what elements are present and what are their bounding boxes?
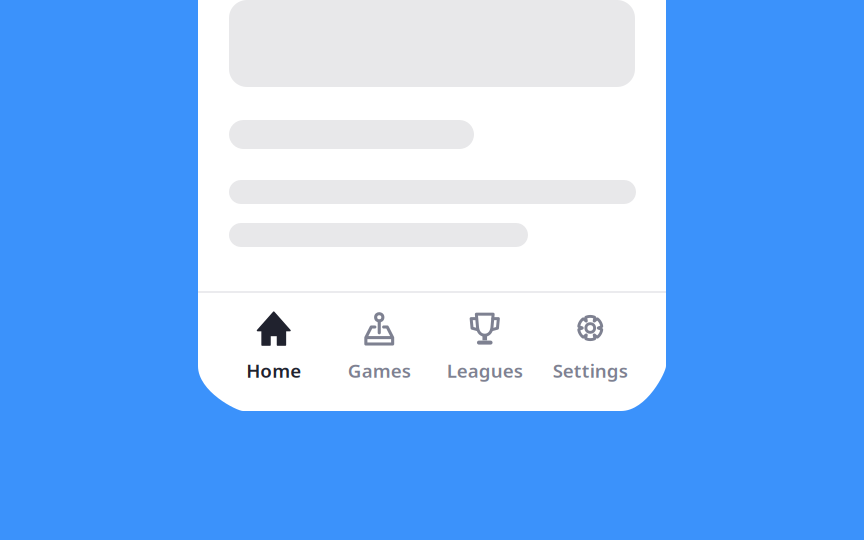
staticText: Home <box>246 358 301 383</box>
staticText: Settings <box>553 358 628 383</box>
button[interactable]: Games <box>326 301 432 393</box>
staticText: Leagues <box>447 358 523 383</box>
staticText: Games <box>348 358 411 383</box>
button[interactable]: Home <box>221 301 326 393</box>
button[interactable]: Settings <box>537 301 643 393</box>
button[interactable]: Leagues <box>432 301 537 393</box>
